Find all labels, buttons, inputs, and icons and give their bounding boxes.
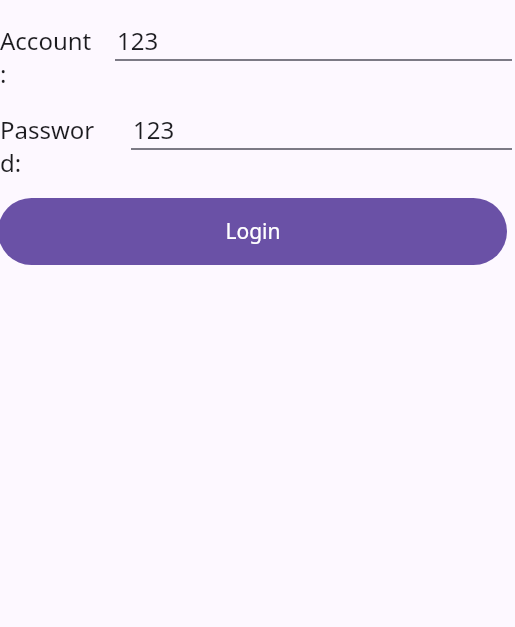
staticText: Login	[225, 217, 281, 246]
staticText: 123	[133, 113, 512, 146]
button[interactable]: Login	[0, 198, 507, 265]
staticText: 123	[117, 24, 512, 57]
staticText: Account:	[0, 24, 92, 90]
staticText: Password:	[0, 113, 108, 179]
